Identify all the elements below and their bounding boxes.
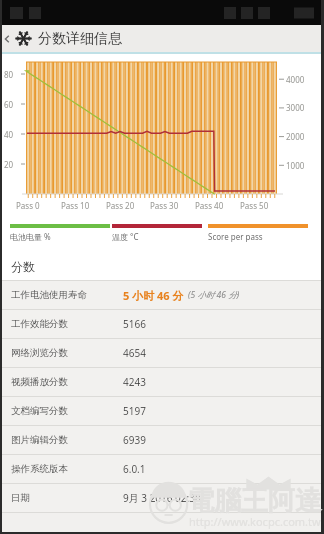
staticText: 日期 <box>11 492 30 504</box>
staticText: 4654 <box>123 346 146 360</box>
staticText: http://www.kocpc.com.tw <box>189 514 321 529</box>
staticText: Pass 10 <box>61 200 90 211</box>
staticText: (5 小时 46 分) <box>188 289 240 301</box>
staticText: 6.0.1 <box>123 462 146 476</box>
staticText: Score per pass <box>208 231 263 242</box>
button[interactable]: 视频播放分数 <box>0 368 324 396</box>
button[interactable]: 文档编写分数 <box>0 397 324 425</box>
staticText: 1000 <box>286 160 305 171</box>
button[interactable]: 工作电池使用寿命 <box>0 281 324 309</box>
staticText: 网络浏览分数 <box>11 347 68 359</box>
button[interactable]: 图片编辑分数 <box>0 426 324 454</box>
staticText: 工作效能分数 <box>11 318 68 330</box>
staticText: 5197 <box>123 404 146 418</box>
staticText: 40 <box>4 129 14 140</box>
button[interactable]: 工作效能分数 <box>0 310 324 338</box>
button[interactable]: 日期 <box>0 484 324 512</box>
staticText: 2000 <box>286 131 305 142</box>
staticText: Pass 20 <box>106 200 135 211</box>
staticText: 電腦王阿達 <box>187 484 322 518</box>
staticText: 温度 °C <box>112 231 139 242</box>
staticText: 5166 <box>123 317 146 331</box>
staticText: Pass 30 <box>150 200 179 211</box>
staticText: 4243 <box>123 375 146 389</box>
staticText: Pass 40 <box>195 200 224 211</box>
staticText: 图片编辑分数 <box>11 434 68 446</box>
button[interactable]: 网络浏览分数 <box>0 339 324 367</box>
staticText: 视频播放分数 <box>11 376 68 388</box>
staticText: 80 <box>4 69 14 80</box>
staticText: Pass 0 <box>16 200 40 211</box>
button[interactable]: 操作系统版本 <box>0 455 324 483</box>
button[interactable]: Back <box>0 25 14 52</box>
staticText: Pass 50 <box>240 200 269 211</box>
staticText: 工作电池使用寿命 <box>11 289 87 301</box>
staticText: 5 小时 46 分 <box>123 288 184 303</box>
staticText: 操作系统版本 <box>11 463 68 475</box>
staticText: 60 <box>4 99 14 110</box>
staticText: 电池电量 % <box>10 231 51 242</box>
staticText: 3000 <box>286 102 305 113</box>
staticText: 9月 3 2016 02:38 <box>123 491 201 505</box>
staticText: 分数 <box>11 259 35 274</box>
staticText: 20 <box>4 159 14 170</box>
staticText: 4000 <box>286 74 305 85</box>
staticText: 6939 <box>123 433 146 447</box>
staticText: 分数详细信息 <box>38 30 122 48</box>
staticText: 文档编写分数 <box>11 405 68 417</box>
